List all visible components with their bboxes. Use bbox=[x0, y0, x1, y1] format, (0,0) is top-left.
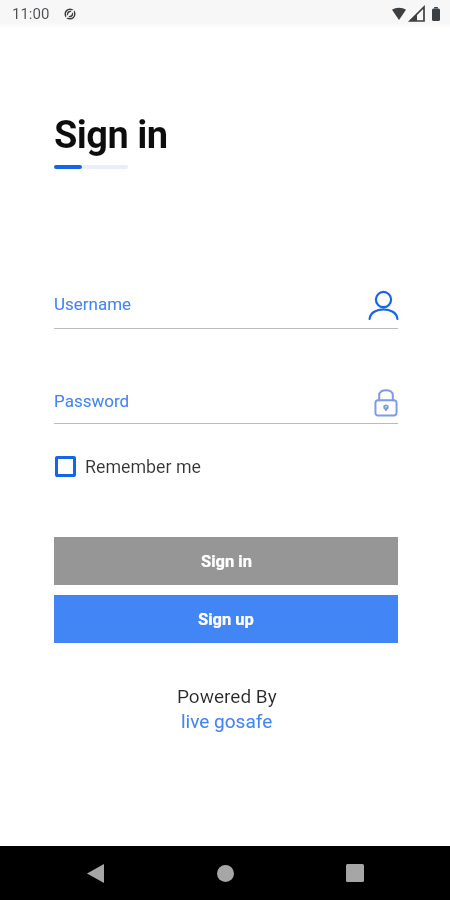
staticText: Sign in bbox=[201, 552, 252, 571]
staticText: Username bbox=[54, 294, 132, 314]
button[interactable]: Sign up bbox=[54, 595, 398, 643]
button[interactable]: Recent apps bbox=[328, 846, 382, 900]
button[interactable]: Back bbox=[68, 846, 122, 900]
button[interactable]: Username bbox=[54, 288, 398, 329]
button[interactable]: live gosafe bbox=[181, 710, 273, 732]
button[interactable]: Remember me bbox=[55, 456, 201, 477]
button[interactable]: Password bbox=[54, 385, 398, 424]
staticText: Powered By bbox=[177, 685, 277, 707]
staticText: Sign in bbox=[54, 113, 168, 158]
button[interactable]: Username bbox=[369, 292, 398, 319]
button[interactable]: Password bbox=[375, 388, 397, 416]
button[interactable]: Home bbox=[198, 846, 252, 900]
staticText: Sign up bbox=[198, 610, 254, 629]
staticText: Remember me bbox=[85, 456, 201, 477]
staticText: Password bbox=[54, 391, 130, 411]
staticText: 11:00 bbox=[12, 5, 50, 23]
button[interactable]: Sign in bbox=[54, 537, 398, 585]
